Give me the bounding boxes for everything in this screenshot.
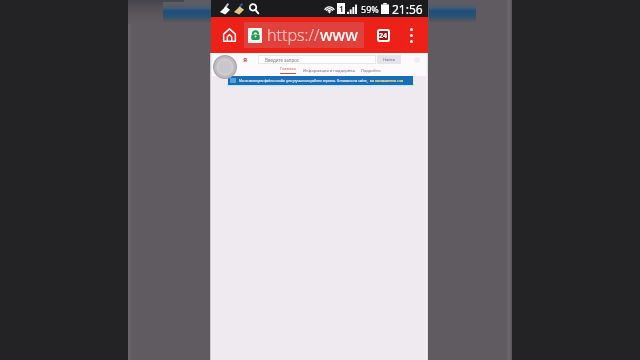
button[interactable]: Account <box>414 57 420 63</box>
button[interactable]: Tabs <box>371 17 396 53</box>
button[interactable]: Найти <box>377 55 401 64</box>
button[interactable]: Введите запрос <box>259 56 375 63</box>
staticText: Подробно <box>361 68 381 73</box>
staticText: 1 <box>339 3 344 14</box>
staticText: https:// <box>267 24 320 46</box>
staticText: Я <box>243 56 248 64</box>
staticText: Найти <box>383 57 396 62</box>
button[interactable]: https:// <box>244 22 364 48</box>
button[interactable]: Мы используем файлы cookie для улучшения… <box>228 76 413 85</box>
staticText: вы соглашаетесь с их использованием <box>370 79 413 83</box>
staticText: Введите запрос <box>265 57 300 63</box>
staticText: Информация и поддержка <box>303 68 355 73</box>
staticText: Мы используем файлы cookie для улучшения… <box>239 79 368 83</box>
button[interactable]: Home <box>214 17 244 53</box>
staticText: 24 <box>379 31 388 40</box>
staticText: 59% <box>361 3 379 15</box>
button[interactable]: More options <box>401 17 422 53</box>
staticText: www <box>320 24 358 46</box>
staticText: 21:56 <box>392 1 423 17</box>
staticText: Главная <box>280 66 296 71</box>
